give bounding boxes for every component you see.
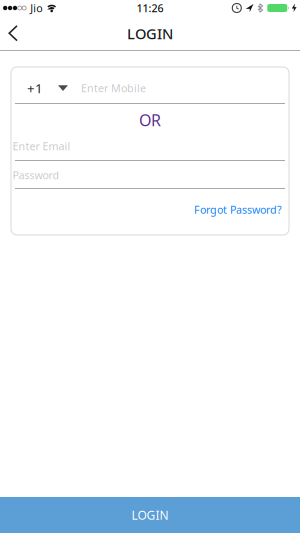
staticText: Password [12, 168, 59, 182]
button[interactable]: LOGIN [0, 497, 300, 533]
button[interactable]: Back [0, 17, 18, 50]
staticText: +1 [27, 79, 43, 97]
staticText: LOGIN [131, 507, 168, 523]
staticText: LOGIN [127, 24, 173, 43]
button[interactable]: Forgot Password? [194, 202, 282, 217]
staticText: Enter Mobile [81, 81, 146, 95]
button[interactable]: Enter Email [11, 67, 285, 79]
button[interactable]: Country code and mobile number [11, 67, 289, 103]
button[interactable]: Password [11, 67, 285, 79]
staticText: Forgot Password? [194, 202, 282, 217]
staticText: Enter Email [12, 139, 70, 153]
staticText: Jio [30, 1, 42, 15]
staticText: OR [139, 109, 161, 131]
staticText: 11:26 [136, 1, 163, 15]
